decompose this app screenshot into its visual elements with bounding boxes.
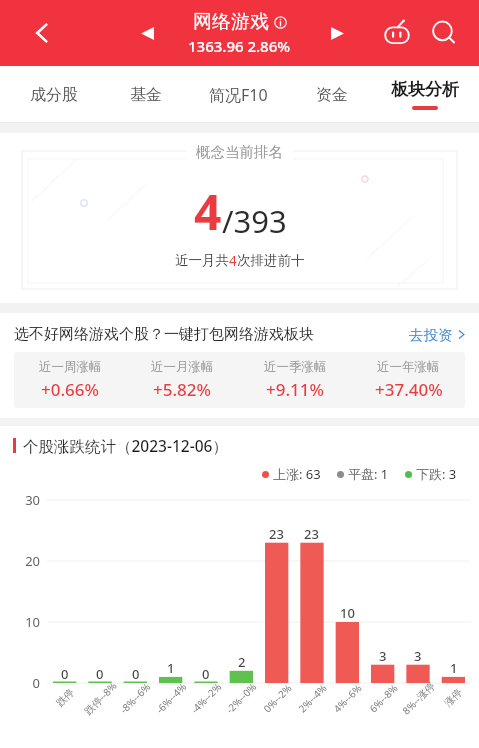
staticText: 8%--涨停 [399, 679, 438, 717]
button[interactable]: Back [22, 13, 62, 53]
staticText: 30 [25, 491, 40, 509]
button[interactable]: Assistant [377, 13, 417, 53]
staticText: 4 [194, 179, 222, 244]
staticText: 0%--2% [260, 681, 295, 715]
staticText: 0 [32, 674, 40, 692]
staticText: 0 [61, 665, 69, 683]
staticText: 10 [340, 604, 355, 622]
staticText: 选不好网络游戏个股？一键打包网络游戏板块 [14, 325, 314, 344]
staticText: +37.40% [375, 378, 443, 401]
button[interactable]: Next [320, 16, 354, 50]
staticText: -6%--4% [153, 680, 189, 716]
staticText: 0 [132, 665, 140, 683]
staticText: 23 [269, 525, 284, 543]
staticText: 3 [379, 647, 387, 665]
staticText: 近一周涨幅 [39, 359, 102, 375]
staticText: 近一月涨幅 [151, 359, 214, 375]
staticText: 跌停 [53, 686, 77, 709]
button[interactable]: 简况F10 [192, 66, 285, 123]
staticText: 基金 [130, 85, 162, 105]
staticText: 下跌 [416, 466, 442, 482]
staticText: 1 [167, 659, 175, 677]
staticText: +0.66% [41, 378, 100, 401]
staticText: 成分股 [30, 85, 78, 105]
staticText: 23 [304, 525, 319, 543]
staticText: 3 [414, 647, 422, 665]
staticText: 网络游戏 [193, 10, 269, 34]
staticText: 4 [229, 252, 237, 270]
staticText: -4%--2% [188, 680, 224, 716]
button[interactable]: Previous [130, 16, 164, 50]
staticText: : 1 [374, 465, 389, 483]
staticText: 0 [96, 665, 104, 683]
staticText: 平盘 [348, 466, 374, 482]
button[interactable]: 基金 [100, 66, 192, 123]
staticText: /393 [222, 200, 287, 242]
button[interactable]: 资金 [285, 66, 378, 123]
button[interactable]: 板块分析 [378, 66, 471, 123]
staticText: 概念当前排名 [196, 143, 283, 161]
staticText: 2 [238, 653, 246, 671]
staticText: 跌停--8% [81, 679, 120, 717]
staticText: : 3 [442, 465, 457, 483]
button[interactable]: 成分股 [8, 66, 100, 123]
staticText: 2%--4% [295, 681, 330, 715]
staticText: : 63 [299, 465, 321, 483]
button[interactable]: Search [423, 12, 465, 54]
staticText: 去投资 [409, 326, 453, 344]
staticText: 近一年涨幅 [377, 359, 440, 375]
staticText: -2%--0% [223, 680, 259, 716]
staticText: 4%--6% [330, 681, 365, 715]
staticText: 10 [25, 613, 40, 631]
staticText: 近一季涨幅 [264, 359, 327, 375]
staticText: 简况F10 [209, 84, 268, 106]
staticText: 近一月共 [175, 252, 229, 269]
staticText: -8%--6% [117, 680, 153, 716]
staticText: 1 [450, 659, 458, 677]
staticText: 20 [25, 552, 40, 570]
staticText: 6%--8% [366, 681, 401, 715]
button[interactable]: 选不好网络游戏个股？一键打包网络游戏板块 [14, 325, 467, 344]
staticText: +9.11% [266, 378, 325, 401]
staticText: 上涨 [273, 466, 299, 482]
staticText: 个股涨跌统计（2023-12-06） [23, 435, 228, 456]
staticText: 板块分析 [391, 79, 459, 100]
staticText: +5.82% [153, 378, 212, 401]
staticText: 1363.96 2.86% [188, 36, 291, 56]
staticText: 涨停 [441, 686, 465, 709]
staticText: 次排进前十 [237, 252, 305, 269]
staticText: 0 [202, 665, 210, 683]
staticText: 资金 [316, 85, 348, 105]
